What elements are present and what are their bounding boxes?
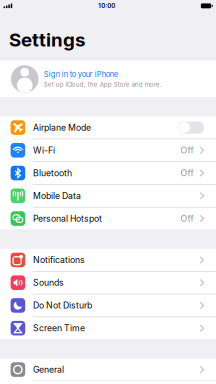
- button[interactable]: Sign in to your iPhone: [0, 61, 216, 97]
- staticText: Screen Time: [33, 323, 85, 333]
- staticText: Set up iCloud, the App Store and more.: [44, 81, 162, 88]
- staticText: Bluetooth: [33, 168, 72, 178]
- button[interactable]: Personal Hotspot: [0, 207, 216, 230]
- button[interactable]: General: [0, 358, 216, 381]
- staticText: Settings: [9, 28, 85, 51]
- button[interactable]: Mobile Data: [0, 185, 216, 207]
- staticText: Wi-Fi: [33, 145, 55, 155]
- staticText: Sign in to your iPhone: [44, 70, 118, 79]
- staticText: Notifications: [33, 255, 85, 265]
- staticText: Airplane Mode: [33, 122, 91, 133]
- staticText: Off: [180, 145, 193, 155]
- button[interactable]: Notifications: [0, 249, 216, 271]
- button[interactable]: Screen Time: [0, 317, 216, 339]
- staticText: Off: [180, 213, 193, 224]
- staticText: Sounds: [33, 277, 64, 288]
- staticText: General: [33, 364, 64, 375]
- staticText: Do Not Disturb: [33, 300, 92, 311]
- button[interactable]: Bluetooth: [0, 162, 216, 184]
- staticText: Off: [180, 168, 193, 178]
- staticText: 10:00: [98, 2, 115, 9]
- button[interactable]: Sounds: [0, 272, 216, 294]
- button[interactable]: Wi-Fi: [0, 139, 216, 161]
- button[interactable]: Do Not Disturb: [0, 294, 216, 316]
- staticText: Personal Hotspot: [33, 213, 102, 224]
- staticText: Mobile Data: [33, 190, 81, 201]
- button[interactable]: Airplane Mode: [0, 116, 216, 139]
